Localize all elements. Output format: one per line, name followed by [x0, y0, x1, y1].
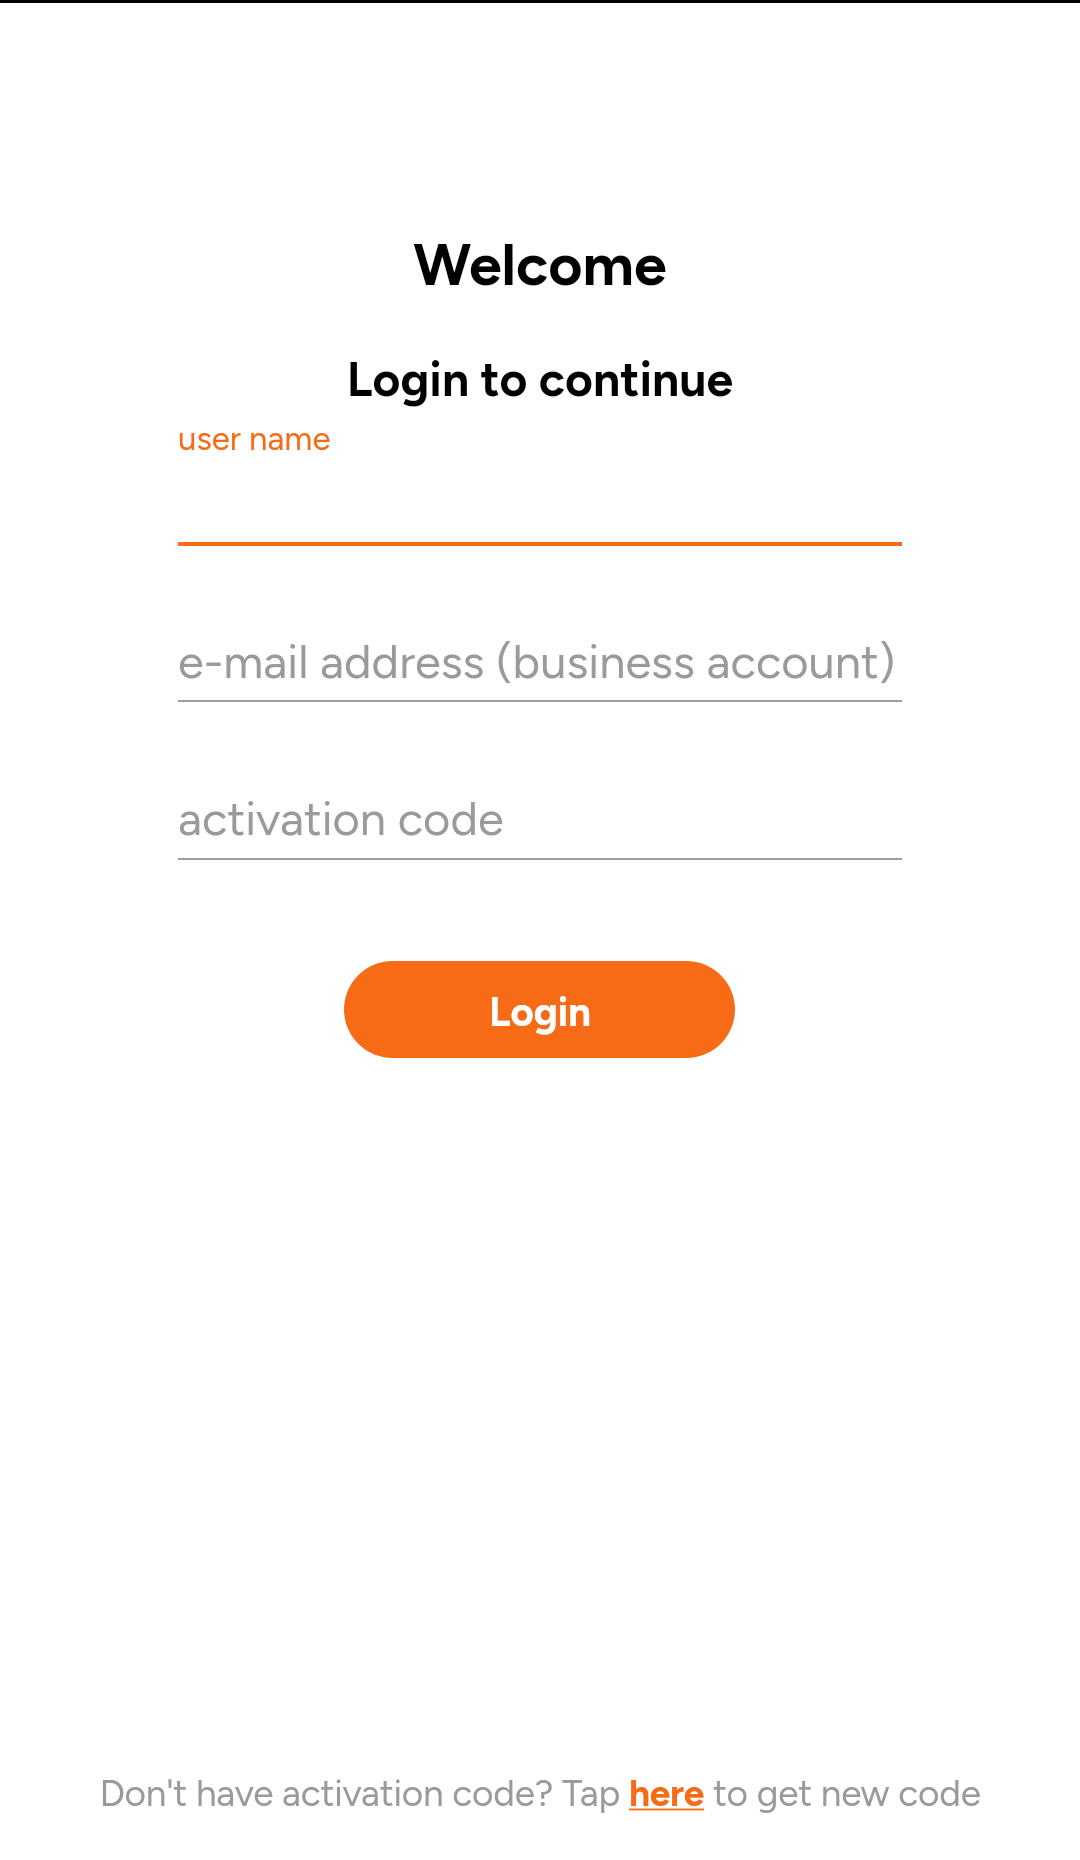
staticText: Welcome	[0, 229, 1080, 300]
staticText: user name	[178, 419, 331, 459]
staticText: e-mail address (business account)	[178, 633, 896, 689]
button[interactable]: activation code field	[178, 781, 902, 860]
staticText: activation code	[178, 790, 504, 846]
button[interactable]: Login	[344, 961, 735, 1058]
button[interactable]: user name field	[178, 410, 902, 546]
staticText: Don't have activation code? Tap here to …	[99, 1771, 981, 1815]
button[interactable]: Don't have activation code? Tap here to …	[0, 1755, 1080, 1830]
staticText: Login	[489, 988, 591, 1036]
button[interactable]: e-mail address field	[178, 624, 902, 702]
staticText: Login to continue	[0, 350, 1080, 408]
